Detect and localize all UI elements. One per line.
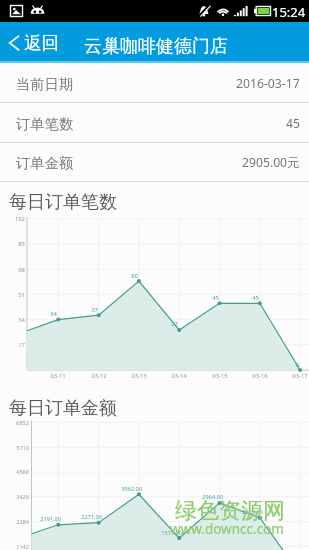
staticText: 03-17 bbox=[290, 372, 309, 380]
staticText: 2603.00 bbox=[237, 508, 263, 516]
staticText: 15:24 bbox=[272, 3, 306, 21]
staticText: 订单笔数 bbox=[16, 115, 74, 133]
staticText: 每日订单笔数 bbox=[9, 191, 117, 214]
staticText: 51 bbox=[9, 291, 25, 299]
staticText: 2016-03-17 bbox=[236, 75, 300, 92]
staticText: 60 bbox=[122, 272, 138, 280]
staticText: www.downcc.com bbox=[170, 520, 284, 538]
staticText: 03-11 bbox=[48, 372, 68, 380]
staticText: 云巢咖啡健德门店 bbox=[84, 35, 228, 58]
staticText: 03-16 bbox=[250, 372, 270, 380]
staticText: 85 bbox=[9, 240, 25, 248]
staticText: 每日订单金额 bbox=[9, 397, 117, 420]
staticText: 2964.00 bbox=[197, 493, 223, 501]
staticText: 68 bbox=[9, 266, 25, 274]
staticText: 2271.00 bbox=[76, 513, 102, 521]
staticText: 订单金额 bbox=[16, 154, 74, 172]
staticText: 1142 bbox=[7, 543, 29, 550]
staticText: 45 bbox=[203, 294, 219, 302]
staticText: 03-14 bbox=[169, 372, 189, 380]
staticText: 6852 bbox=[7, 419, 29, 427]
staticText: 03-13 bbox=[129, 372, 149, 380]
button[interactable]: 订单金额 bbox=[0, 142, 309, 181]
staticText: 2905.00元 bbox=[242, 154, 300, 171]
staticText: 34 bbox=[9, 316, 25, 324]
staticText: 03-15 bbox=[210, 372, 230, 380]
staticText: 2284 bbox=[7, 518, 29, 526]
staticText: 17 bbox=[9, 341, 25, 349]
staticText: 37 bbox=[82, 306, 98, 314]
staticText: 45 bbox=[243, 294, 259, 302]
staticText: 0 bbox=[283, 361, 299, 369]
staticText: 返回 bbox=[24, 32, 59, 54]
staticText: 34 bbox=[41, 310, 57, 318]
button[interactable]: 订单笔数 bbox=[0, 103, 309, 142]
staticText: 45 bbox=[286, 115, 300, 132]
staticText: 4568 bbox=[7, 468, 29, 476]
staticText: 5710 bbox=[7, 444, 29, 452]
staticText: 当前日期 bbox=[16, 75, 74, 93]
staticText: 03-12 bbox=[89, 372, 109, 380]
staticText: 2191.00 bbox=[35, 515, 61, 523]
staticText: 3962.00 bbox=[116, 485, 142, 493]
button[interactable]: 返回 bbox=[4, 22, 65, 61]
button[interactable]: 当前日期 bbox=[0, 63, 309, 102]
staticText: 3426 bbox=[7, 493, 29, 501]
staticText: 1571.00 bbox=[156, 529, 182, 537]
staticText: 102 bbox=[9, 215, 25, 223]
staticText: 绿色资源网 bbox=[175, 497, 285, 525]
staticText: 27 bbox=[162, 320, 178, 328]
